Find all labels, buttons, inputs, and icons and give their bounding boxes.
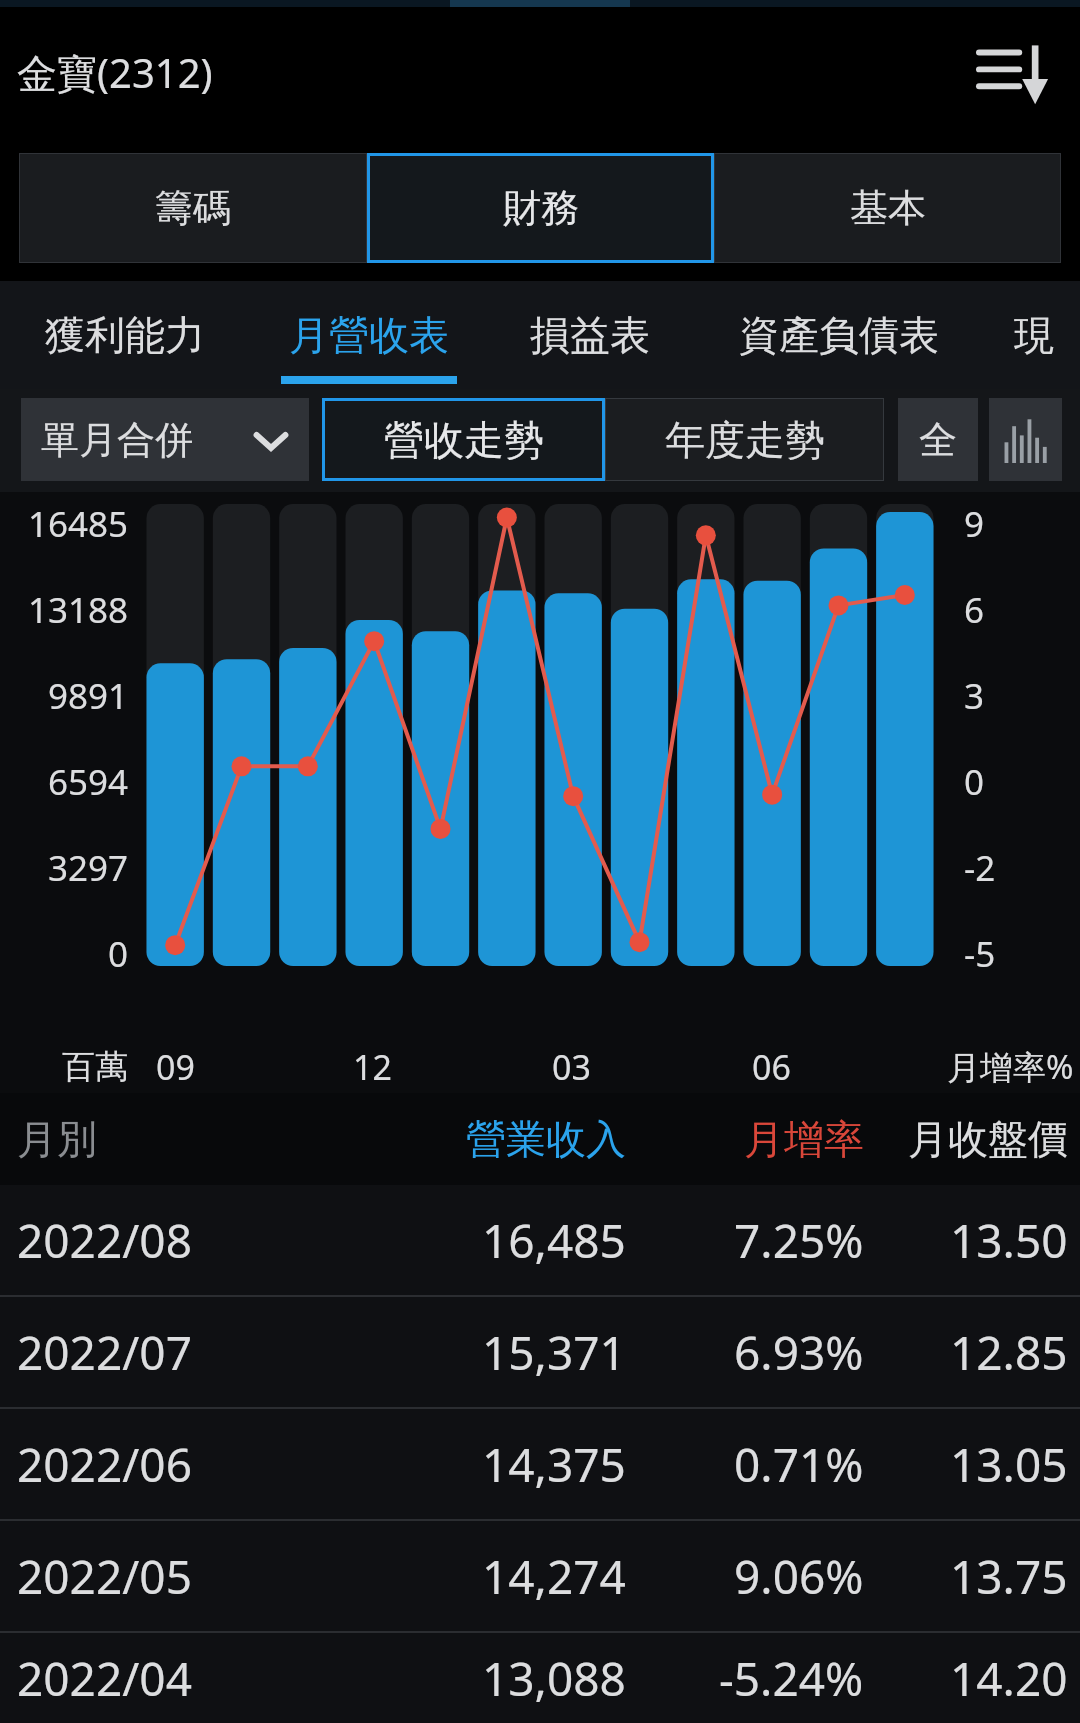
staticText: 13,088 <box>482 1647 626 1710</box>
staticText: 營收走勢 <box>384 415 544 465</box>
staticText: 9.06% <box>734 1545 864 1608</box>
staticText: 9 <box>964 500 985 548</box>
button[interactable]: 月營收表 <box>250 281 488 389</box>
button[interactable]: 2022/07 <box>0 1297 1080 1407</box>
staticText: 營業收入 <box>466 1114 626 1164</box>
staticText: 16485 <box>28 500 129 548</box>
staticText: -5.24% <box>719 1647 864 1710</box>
button[interactable]: 2022/08 <box>0 1185 1080 1295</box>
staticText: 14.20 <box>950 1647 1068 1710</box>
staticText: 月營收表 <box>289 310 449 360</box>
button[interactable]: 2022/04 <box>0 1633 1080 1723</box>
staticText: -5 <box>964 930 996 978</box>
button[interactable]: 單月合併 <box>21 398 309 481</box>
staticText: 13.75 <box>950 1545 1068 1608</box>
staticText: 2022/06 <box>17 1433 192 1496</box>
button[interactable]: 2022/05 <box>0 1521 1080 1631</box>
staticText: 14,375 <box>482 1433 626 1496</box>
staticText: 13.50 <box>950 1209 1068 1272</box>
staticText: 基本 <box>850 184 926 232</box>
staticText: 3 <box>964 672 985 720</box>
staticText: 0 <box>964 758 985 806</box>
staticText: 年度走勢 <box>665 415 825 465</box>
staticText: 12.85 <box>950 1321 1068 1384</box>
staticText: 2022/08 <box>17 1209 192 1272</box>
staticText: 03 <box>552 1044 591 1090</box>
button[interactable]: 資產負債表 <box>691 281 987 389</box>
button[interactable]: Sort descending <box>968 29 1054 115</box>
staticText: 9891 <box>48 672 129 720</box>
staticText: 月增率 <box>744 1114 864 1164</box>
staticText: 06 <box>752 1044 791 1090</box>
staticText: -2 <box>964 844 996 892</box>
staticText: 12 <box>353 1044 392 1090</box>
staticText: 月收盤價 <box>908 1114 1068 1164</box>
staticText: 資產負債表 <box>739 310 939 360</box>
staticText: 全 <box>919 416 957 464</box>
staticText: 損益表 <box>530 310 650 360</box>
button[interactable]: 財務 <box>367 153 714 263</box>
staticText: 2022/05 <box>17 1545 192 1608</box>
button[interactable]: 營收走勢 <box>322 398 605 481</box>
button[interactable]: 全 <box>898 398 978 481</box>
button[interactable]: 年度走勢 <box>605 398 884 481</box>
staticText: 6 <box>964 586 985 634</box>
button[interactable]: 獲利能力 <box>0 281 250 389</box>
staticText: 百萬 <box>62 1046 128 1088</box>
staticText: 15,371 <box>482 1321 626 1384</box>
staticText: 財務 <box>503 184 579 232</box>
staticText: 3297 <box>48 844 129 892</box>
staticText: 14,274 <box>482 1545 626 1608</box>
staticText: 13188 <box>28 586 129 634</box>
staticText: 6594 <box>48 758 129 806</box>
staticText: 獲利能力 <box>45 310 205 360</box>
button[interactable]: 現 <box>987 281 1080 389</box>
staticText: 籌碼 <box>155 184 231 232</box>
staticText: 金寶(2312) <box>17 45 213 100</box>
staticText: 0 <box>108 930 129 978</box>
button[interactable]: Chart style <box>989 398 1062 481</box>
staticText: 6.93% <box>734 1321 864 1384</box>
staticText: 現 <box>1014 310 1054 360</box>
staticText: 月別 <box>17 1114 97 1164</box>
staticText: 月增率% <box>947 1044 1074 1089</box>
staticText: 0.71% <box>734 1433 864 1496</box>
button[interactable]: 損益表 <box>488 281 691 389</box>
button[interactable]: 2022/06 <box>0 1409 1080 1519</box>
staticText: 單月合併 <box>41 416 193 464</box>
staticText: 7.25% <box>734 1209 864 1272</box>
button[interactable]: 籌碼 <box>19 153 367 263</box>
staticText: 2022/07 <box>17 1321 192 1384</box>
button[interactable]: 基本 <box>714 153 1061 263</box>
staticText: 16,485 <box>482 1209 626 1272</box>
staticText: 09 <box>156 1044 195 1090</box>
staticText: 13.05 <box>950 1433 1068 1496</box>
staticText: 2022/04 <box>17 1647 192 1710</box>
